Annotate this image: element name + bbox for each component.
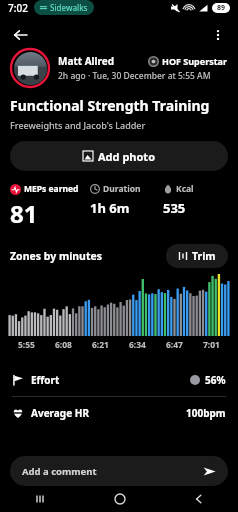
button[interactable]: More options — [206, 23, 230, 47]
staticText: Duration — [103, 183, 141, 195]
staticText: 81 — [10, 197, 38, 230]
staticText: Effort — [31, 373, 60, 387]
other: Send — [202, 464, 216, 478]
staticText: Functional Strength Training — [10, 96, 210, 115]
staticText: Freeweights and Jacob's Ladder — [10, 119, 146, 131]
staticText: 5:55 — [18, 339, 35, 351]
staticText: 6:34 — [129, 339, 146, 351]
staticText: Average HR — [31, 406, 89, 420]
staticText: Matt Allred — [58, 54, 115, 68]
button[interactable]: Home — [80, 486, 159, 512]
button[interactable]: Back — [8, 23, 32, 47]
button[interactable]: Average HR — [0, 397, 238, 429]
staticText: MEPs earned — [24, 183, 79, 195]
staticText: 2h ago · Tue, 30 December at 5:55 AM — [58, 70, 211, 82]
staticText: 56% — [205, 373, 226, 387]
button[interactable]: Add a comment — [10, 456, 228, 486]
staticText: Trim — [192, 249, 216, 263]
button[interactable]: Back — [159, 486, 238, 512]
staticText: 6:21 — [92, 339, 109, 351]
staticText: Sidewalks — [50, 2, 88, 13]
staticText: 6:08 — [55, 339, 72, 351]
staticText: 7:01 — [203, 339, 220, 351]
staticText: Add photo — [98, 149, 156, 164]
staticText: 535 — [163, 199, 186, 217]
staticText: Add a comment — [22, 465, 97, 478]
staticText: HOF Superstar — [162, 55, 228, 67]
staticText: 7:02 — [8, 1, 28, 15]
staticText: Kcal — [176, 183, 194, 195]
staticText: 1h 6m — [90, 199, 130, 217]
staticText: 100bpm — [186, 406, 226, 420]
staticText: 6:47 — [166, 339, 183, 351]
button[interactable]: Trim — [166, 244, 228, 268]
button[interactable]: Recents — [0, 486, 80, 512]
button[interactable]: Effort — [0, 364, 238, 396]
button[interactable]: Add photo — [10, 141, 228, 171]
staticText: 89 — [217, 3, 226, 13]
staticText: Zones by minutes — [10, 249, 103, 263]
